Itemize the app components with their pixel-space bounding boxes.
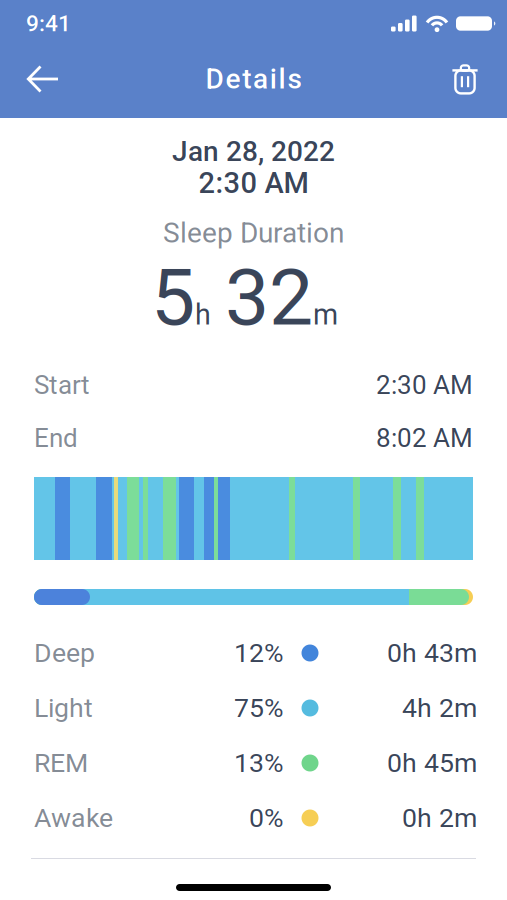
staticText: 0h 45m [387,747,477,779]
staticText: Light [34,692,93,724]
staticText: 13% [234,747,284,779]
staticText: 2:30 AM [376,370,473,400]
staticText: 75% [234,692,284,724]
staticText: Jan 28, 2022 [172,135,335,168]
staticText: Awake [34,802,113,834]
staticText: End [34,423,78,453]
staticText: 0% [249,802,284,834]
staticText: 0h 43m [387,637,477,669]
staticText: 5h 32m [151,253,338,342]
staticText: 12% [234,637,284,669]
staticText: 0h 2m [402,802,477,834]
staticText: 2:30 AM [198,166,308,200]
staticText: 8:02 AM [376,423,473,453]
staticText: Start [34,370,90,400]
button[interactable]: Delete [439,51,491,107]
staticText: Details [206,63,301,95]
staticText: Deep [34,637,95,669]
staticText: REM [34,747,88,779]
staticText: 4h 2m [402,692,477,724]
staticText: 9:41 [26,10,71,37]
button[interactable]: Back [14,51,72,107]
staticText: Sleep Duration [163,217,344,249]
